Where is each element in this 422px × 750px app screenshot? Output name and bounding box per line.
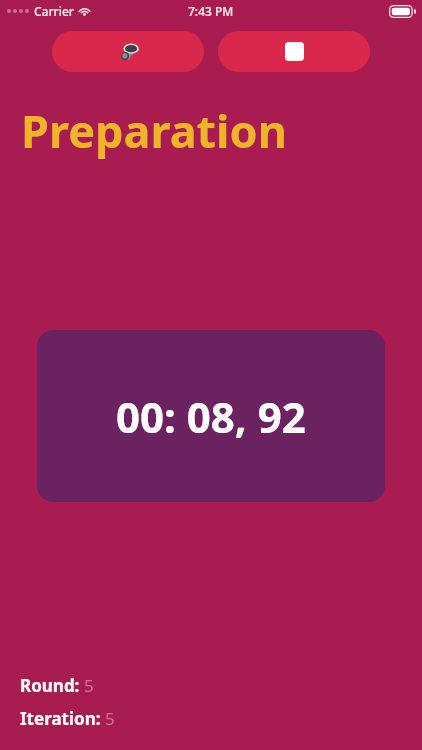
staticText: 7:43 PM [188,3,234,19]
staticText: Carrier [34,3,74,19]
button[interactable]: Stop [218,31,370,72]
button[interactable]: Toggle sound [52,31,204,72]
button[interactable]: 00: 08, 92 [37,330,385,502]
staticText: 00: 08, 92 [116,388,306,445]
staticText: 5 [105,707,115,730]
staticText: 5 [84,674,94,697]
staticText: Round: [20,674,84,697]
staticText: Iteration: [20,707,105,730]
staticText: Preparation [21,100,287,161]
